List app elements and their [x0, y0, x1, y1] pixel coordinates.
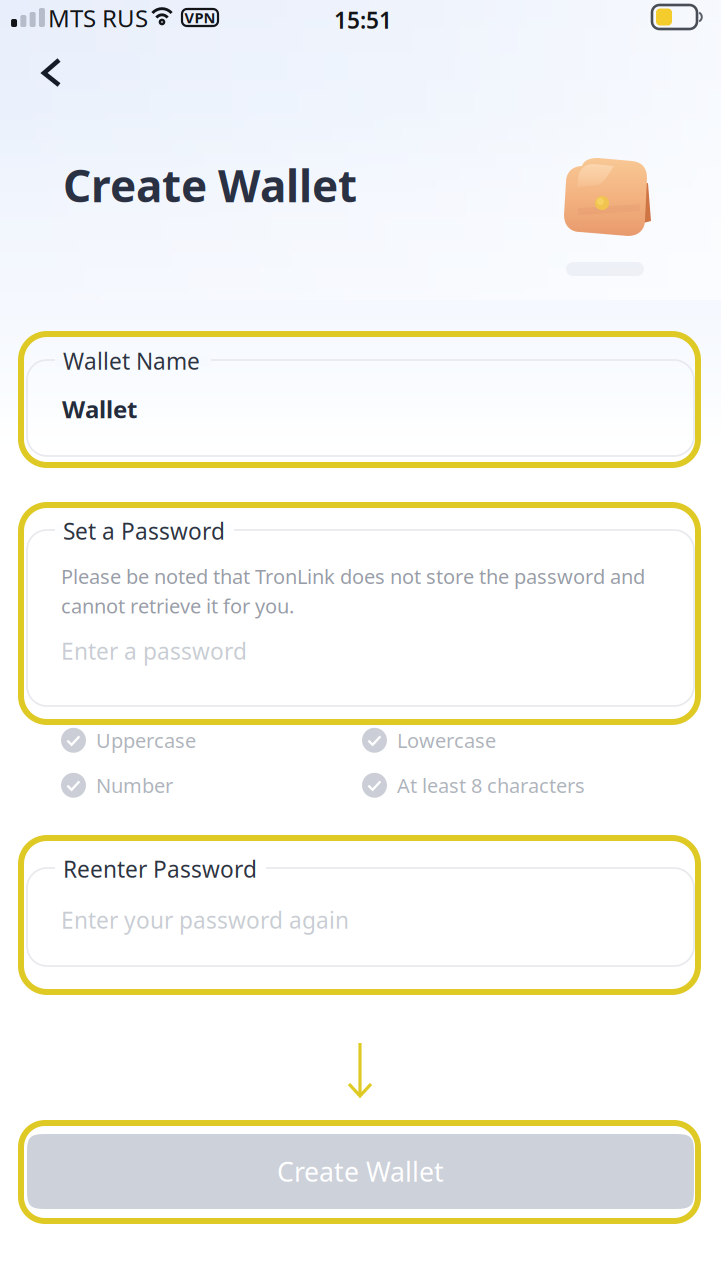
- staticText: VPN: [184, 8, 215, 27]
- staticText: Number: [96, 772, 173, 799]
- staticText: Enter your password again: [61, 905, 349, 935]
- staticText: At least 8 characters: [397, 772, 585, 799]
- staticText: 15:51: [334, 5, 392, 35]
- staticText: Uppercase: [96, 727, 196, 754]
- staticText: Please be noted that TronLink does not s…: [61, 563, 645, 619]
- staticText: Enter a password: [61, 636, 247, 666]
- staticText: Reenter Password: [63, 854, 257, 884]
- staticText: Create Wallet: [277, 1154, 444, 1189]
- staticText: Set a Password: [63, 516, 225, 546]
- button[interactable]: Create Wallet: [27, 1134, 694, 1209]
- button[interactable]: Back: [20, 48, 78, 98]
- staticText: Wallet: [62, 393, 137, 425]
- staticText: MTS RUS: [48, 2, 148, 34]
- staticText: Create Wallet: [63, 156, 357, 214]
- staticText: Wallet Name: [63, 346, 200, 376]
- staticText: Lowercase: [397, 727, 496, 754]
